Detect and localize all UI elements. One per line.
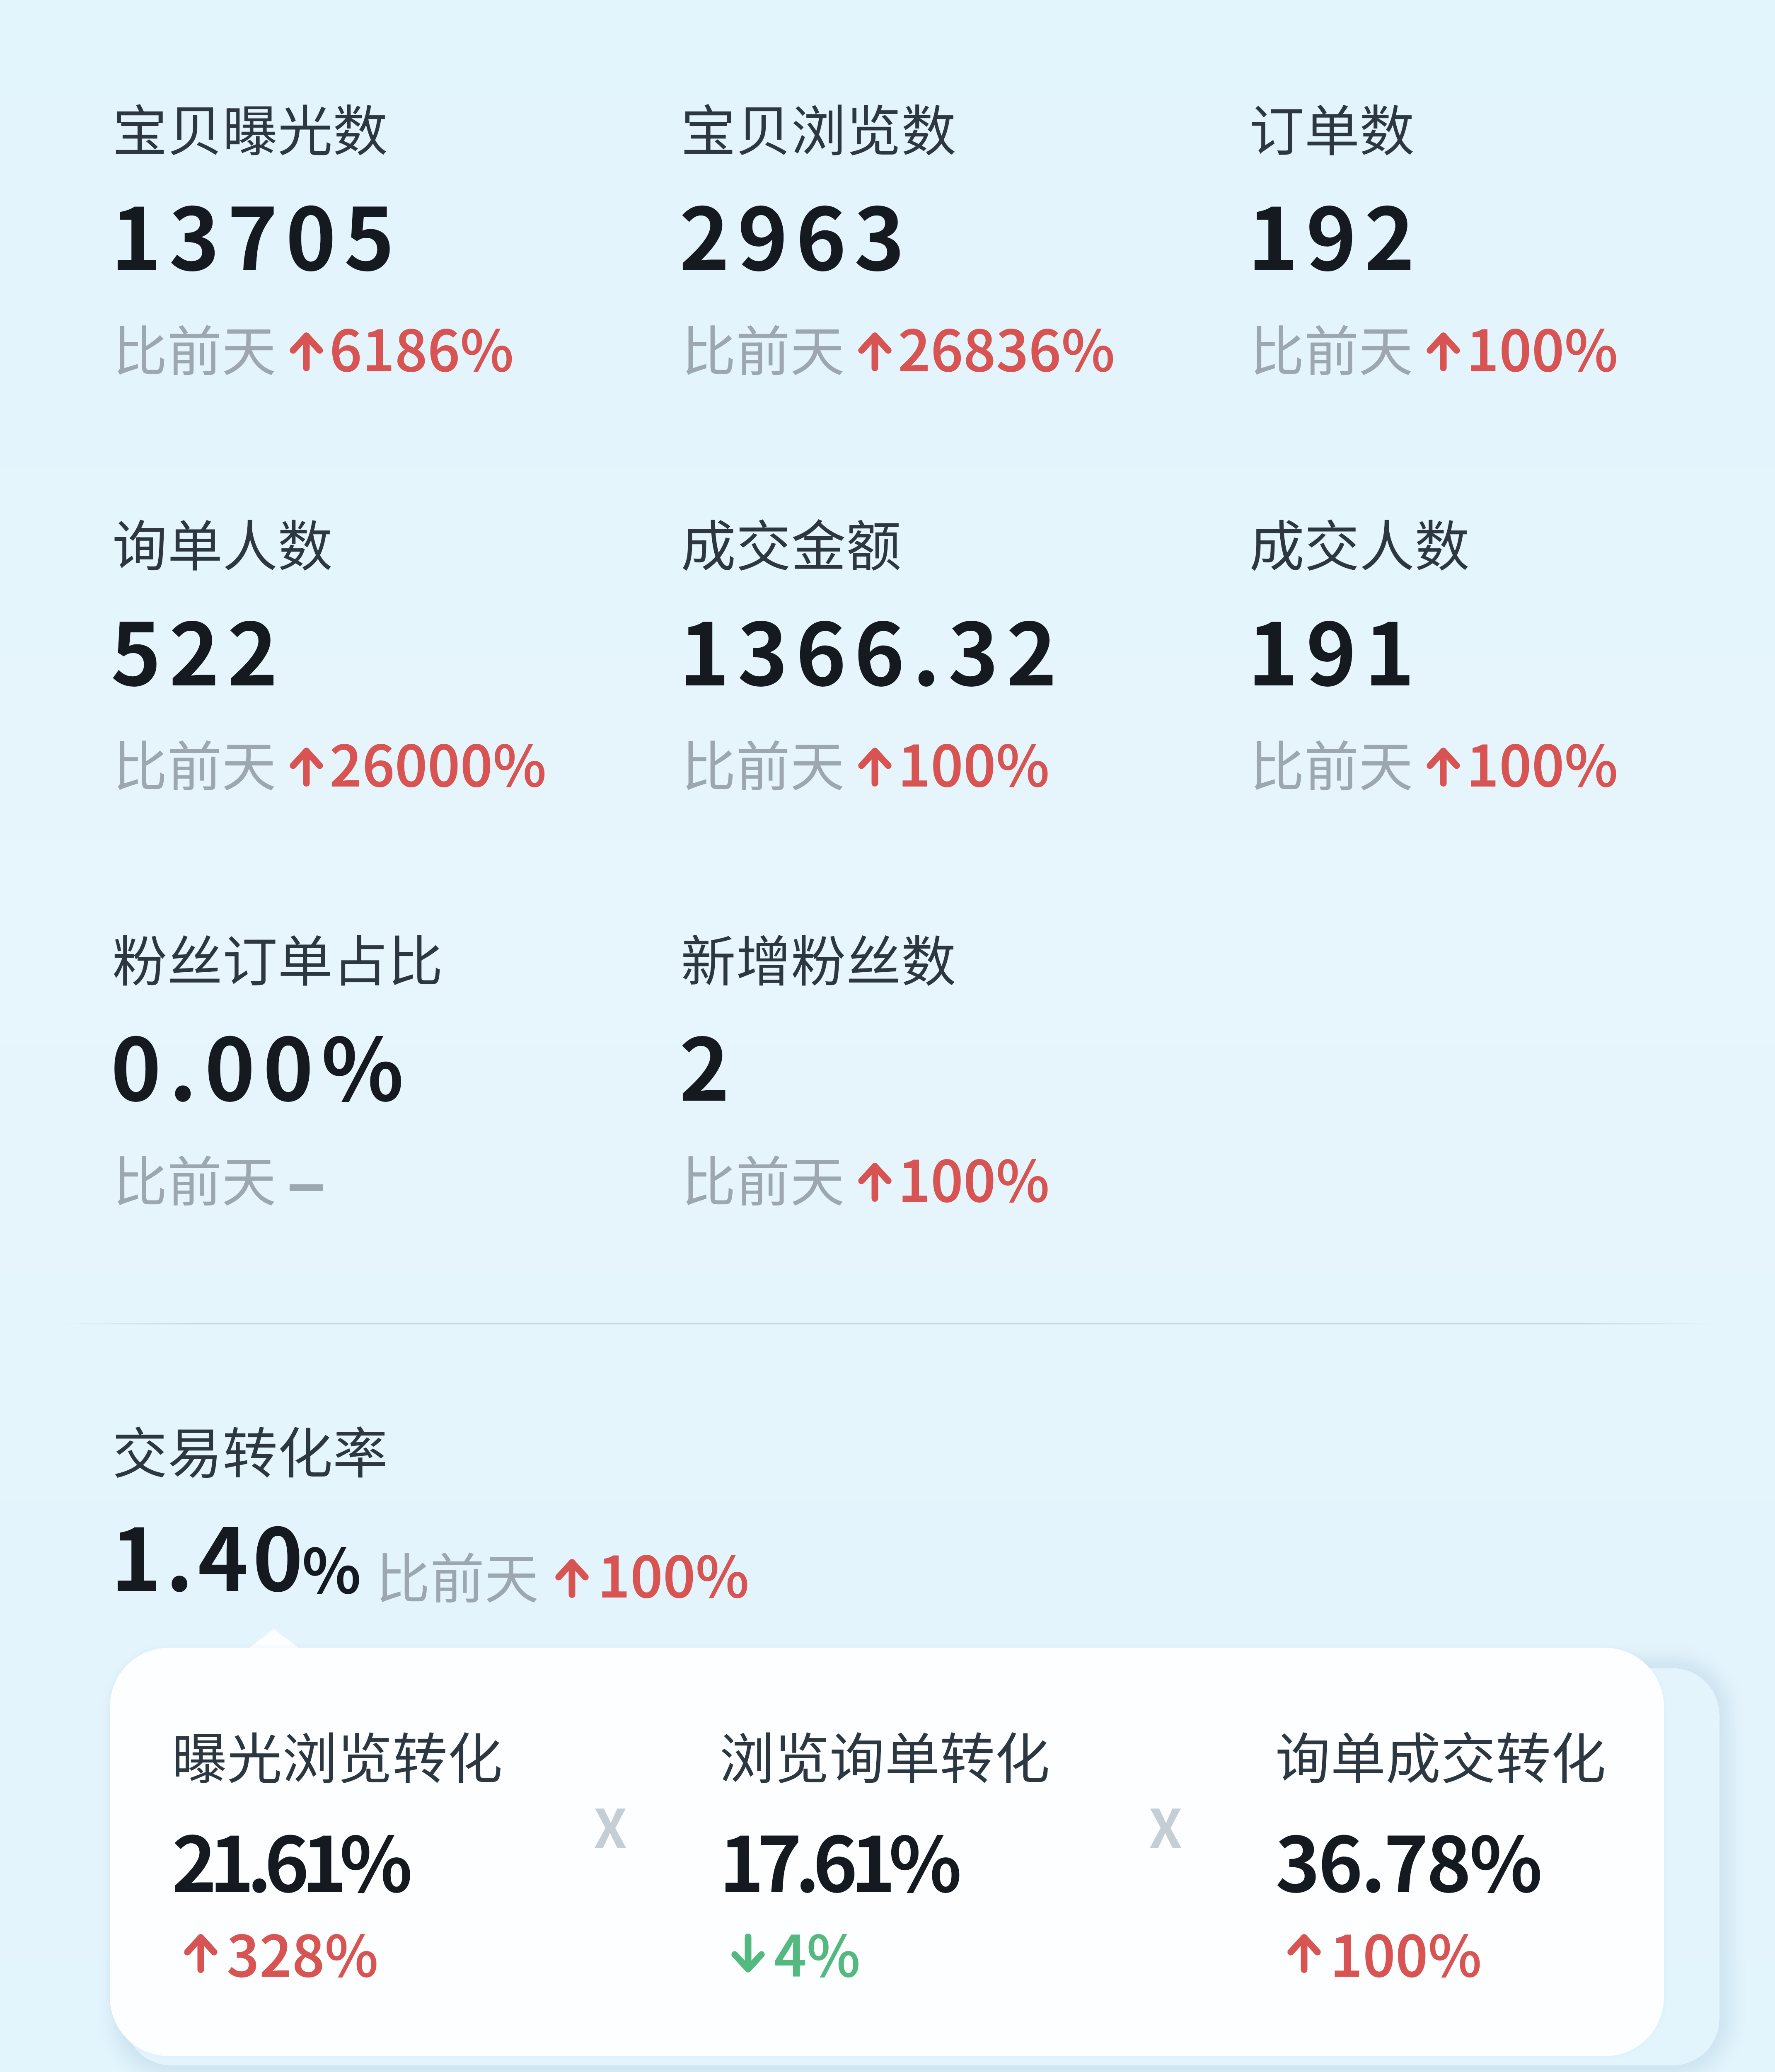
staticText: 比前天 [1250,723,1413,802]
staticText: 26000% [329,721,547,803]
button[interactable] [168,1710,524,1992]
other: Increase [184,1934,218,1973]
staticText: 100% [1466,306,1618,387]
staticText: 192 [1248,171,1423,295]
staticText: 交易转化率 [112,1409,388,1489]
staticText: 询单人数 [112,502,333,582]
staticText: 询单成交转化 [1275,1715,1606,1795]
staticText: 17.61% [719,1804,955,1914]
staticText: 0.00% [111,1001,412,1126]
other: Increase [858,1162,892,1202]
staticText: 比前天 [682,1138,845,1217]
staticText: 比前天 [682,723,845,802]
staticText: 21.61% [172,1804,406,1914]
button[interactable] [108,515,622,796]
button[interactable] [677,99,1190,381]
staticText: 曝光浏览转化 [172,1715,503,1795]
staticText: 宝贝浏览数 [681,87,956,167]
button[interactable] [108,99,622,381]
staticText: 100% [898,1136,1050,1218]
button[interactable] [1271,1710,1627,1992]
staticText: 订单数 [1249,87,1415,167]
button[interactable] [1245,515,1759,796]
staticText: 浏览询单转化 [719,1715,1050,1795]
staticText: 100% [898,721,1050,803]
staticText: 2 [679,1001,738,1126]
other: Increase [555,1559,589,1598]
staticText: 比前天 [376,1535,539,1614]
staticText: 36.78% [1275,1804,1541,1914]
staticText: 13705 [111,171,402,295]
staticText: 6186% [329,306,514,387]
other: Increase [1426,332,1461,371]
staticText: X [1149,1787,1183,1864]
staticText: 比前天 [113,1138,276,1217]
staticText: 1.40 [111,1491,308,1616]
button[interactable] [677,515,1190,796]
staticText: 100% [1330,1911,1482,1993]
other: Decrease [731,1934,765,1973]
button[interactable] [715,1710,1071,1992]
staticText: X [594,1787,627,1864]
staticText: 比前天 [1250,308,1413,387]
staticText: 191 [1248,586,1423,710]
staticText: 522 [111,586,286,710]
staticText: % [302,1522,361,1611]
other: Increase [1426,747,1461,787]
staticText: 1366.32 [679,586,1065,710]
button[interactable] [108,1417,788,1604]
other: Increase [858,747,892,787]
button[interactable] [677,930,1190,1212]
staticText: 比前天 [682,308,845,387]
button[interactable] [108,930,622,1212]
other: Increase [1287,1934,1321,1973]
staticText: 比前天 [113,723,276,802]
other: Increase [289,332,324,371]
staticText: 宝贝曝光数 [112,87,388,167]
staticText: 4% [774,1911,861,1993]
button[interactable]: 曝光浏览转化 [110,1648,1664,2056]
other: Increase [289,747,324,787]
staticText: 2963 [679,171,913,295]
staticText: 比前天 [113,308,276,387]
staticText: 100% [597,1532,749,1614]
staticText: 328% [227,1911,378,1993]
staticText: 26836% [898,306,1115,387]
staticText: 新增粉丝数 [681,917,956,997]
button[interactable] [1245,99,1759,381]
staticText: 成交人数 [1249,502,1470,582]
other: Increase [858,332,892,371]
staticText: 成交金额 [681,502,901,582]
staticText: 粉丝订单占比 [112,917,443,997]
staticText: 100% [1466,721,1618,803]
